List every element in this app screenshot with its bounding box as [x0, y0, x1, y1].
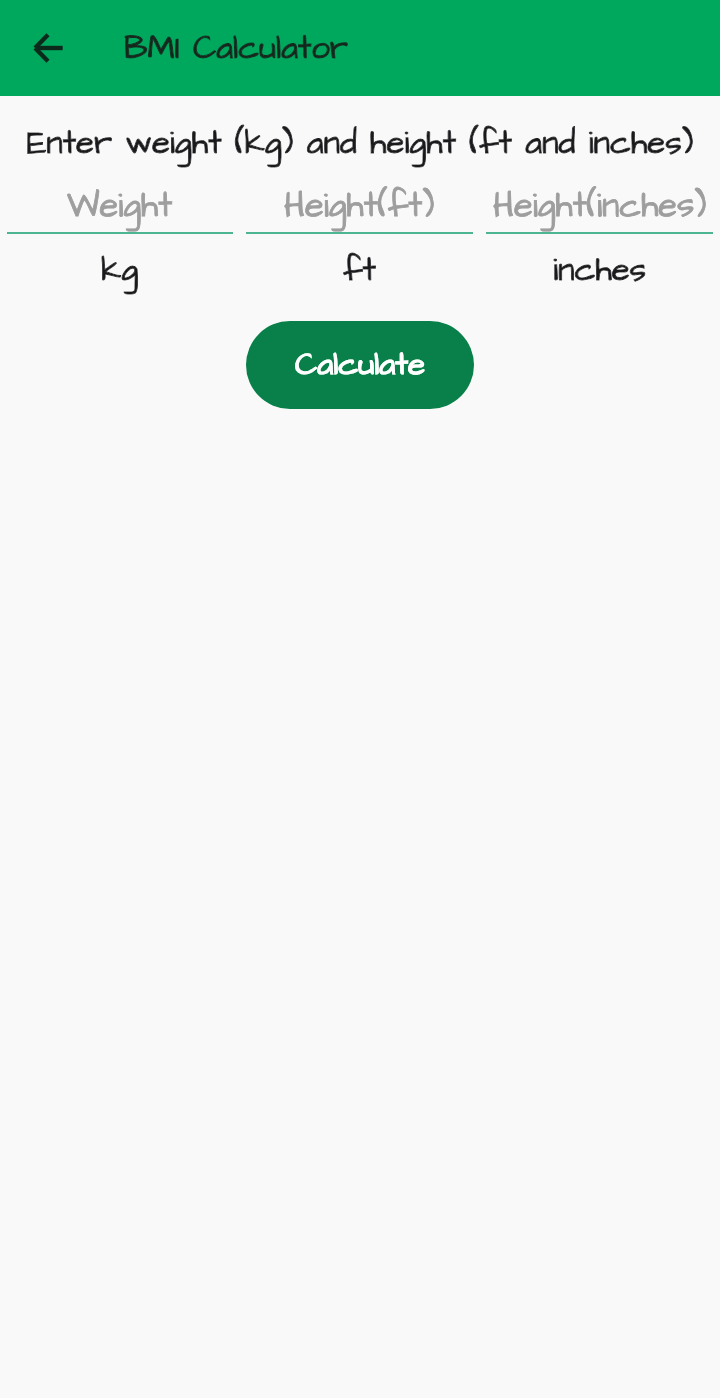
- button[interactable]: Weight: [7, 180, 233, 232]
- staticText: Enter weight (kg) and height (ft and inc…: [0, 120, 720, 166]
- staticText: Height(inches): [493, 182, 707, 230]
- staticText: Height(inches): [493, 182, 707, 230]
- staticText: ft: [343, 247, 376, 293]
- staticText: BMI Calculator: [124, 25, 349, 71]
- staticText: ft: [343, 247, 376, 293]
- staticText: kg: [101, 247, 139, 293]
- button[interactable]: Height(inches): [486, 180, 713, 232]
- staticText: Calculate: [295, 343, 425, 387]
- staticText: Height(ft): [284, 182, 435, 230]
- staticText: kg: [101, 247, 139, 293]
- staticText: Height(ft): [284, 182, 435, 230]
- staticText: Weight: [67, 182, 173, 230]
- button[interactable]: Calculate: [246, 321, 474, 409]
- staticText: inches: [553, 247, 647, 293]
- staticText: Weight: [67, 182, 173, 230]
- button[interactable]: Height(ft): [246, 180, 473, 232]
- staticText: Calculate: [295, 343, 425, 387]
- staticText: inches: [553, 247, 647, 293]
- staticText: Enter weight (kg) and height (ft and inc…: [0, 120, 720, 166]
- staticText: BMI Calculator: [124, 25, 349, 71]
- button[interactable]: Back: [20, 20, 76, 76]
